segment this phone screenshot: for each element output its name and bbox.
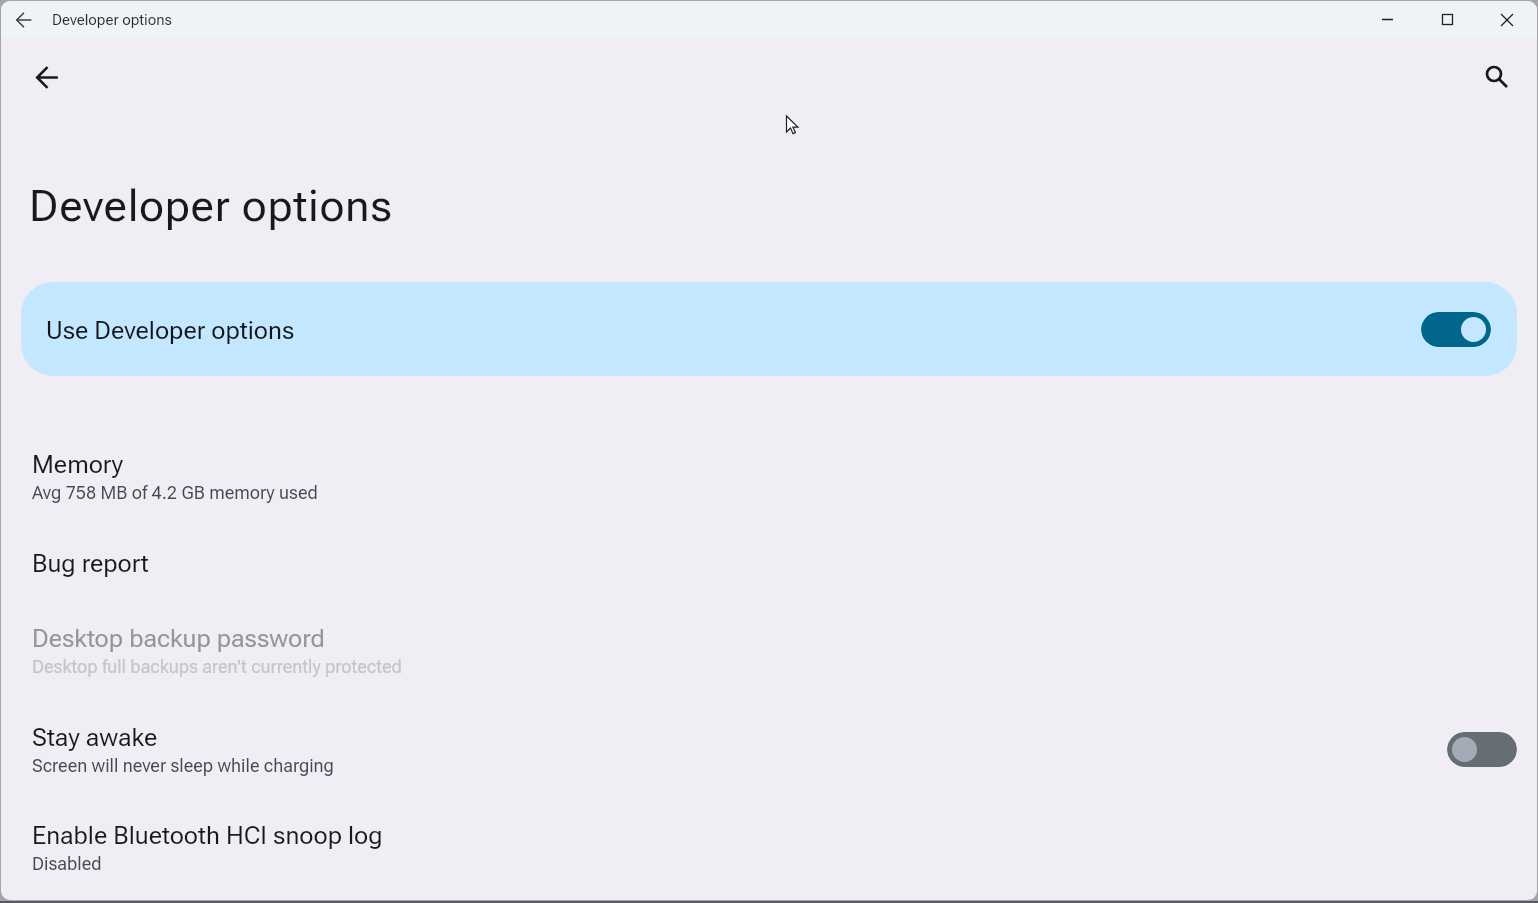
staticText: Enable Bluetooth HCI snoop log: [32, 821, 383, 850]
staticText: Screen will never sleep while charging: [32, 755, 334, 776]
staticText: Desktop full backups aren't currently pr…: [32, 656, 402, 677]
button[interactable]: Navigate up: [25, 55, 69, 99]
button[interactable]: Maximize: [1417, 1, 1477, 38]
staticText: Developer options: [29, 180, 393, 232]
button[interactable]: Back: [1, 1, 47, 38]
button[interactable]: Search: [1475, 55, 1519, 99]
button[interactable]: Bug report: [1, 526, 1537, 600]
button[interactable]: Minimize: [1357, 1, 1417, 38]
staticText: Desktop backup password: [32, 624, 325, 653]
button[interactable]: Close: [1477, 1, 1537, 38]
button[interactable]: Desktop backup password: [1, 600, 1537, 700]
staticText: Bug report: [32, 549, 149, 578]
staticText: Developer options: [52, 11, 172, 29]
staticText: Memory: [32, 450, 124, 479]
staticText: Use Developer options: [46, 316, 295, 345]
staticText: Stay awake: [32, 723, 158, 752]
staticText: Avg 758 MB of 4.2 GB memory used: [32, 482, 318, 503]
staticText: Disabled: [32, 853, 102, 874]
button[interactable]: On: [1421, 312, 1491, 347]
button[interactable]: Use Developer options: [21, 282, 1517, 376]
button[interactable]: Off: [1447, 732, 1517, 767]
button[interactable]: Stay awake: [1, 700, 1537, 798]
button[interactable]: Enable Bluetooth HCI snoop log: [1, 798, 1537, 897]
button[interactable]: Memory: [1, 427, 1537, 526]
